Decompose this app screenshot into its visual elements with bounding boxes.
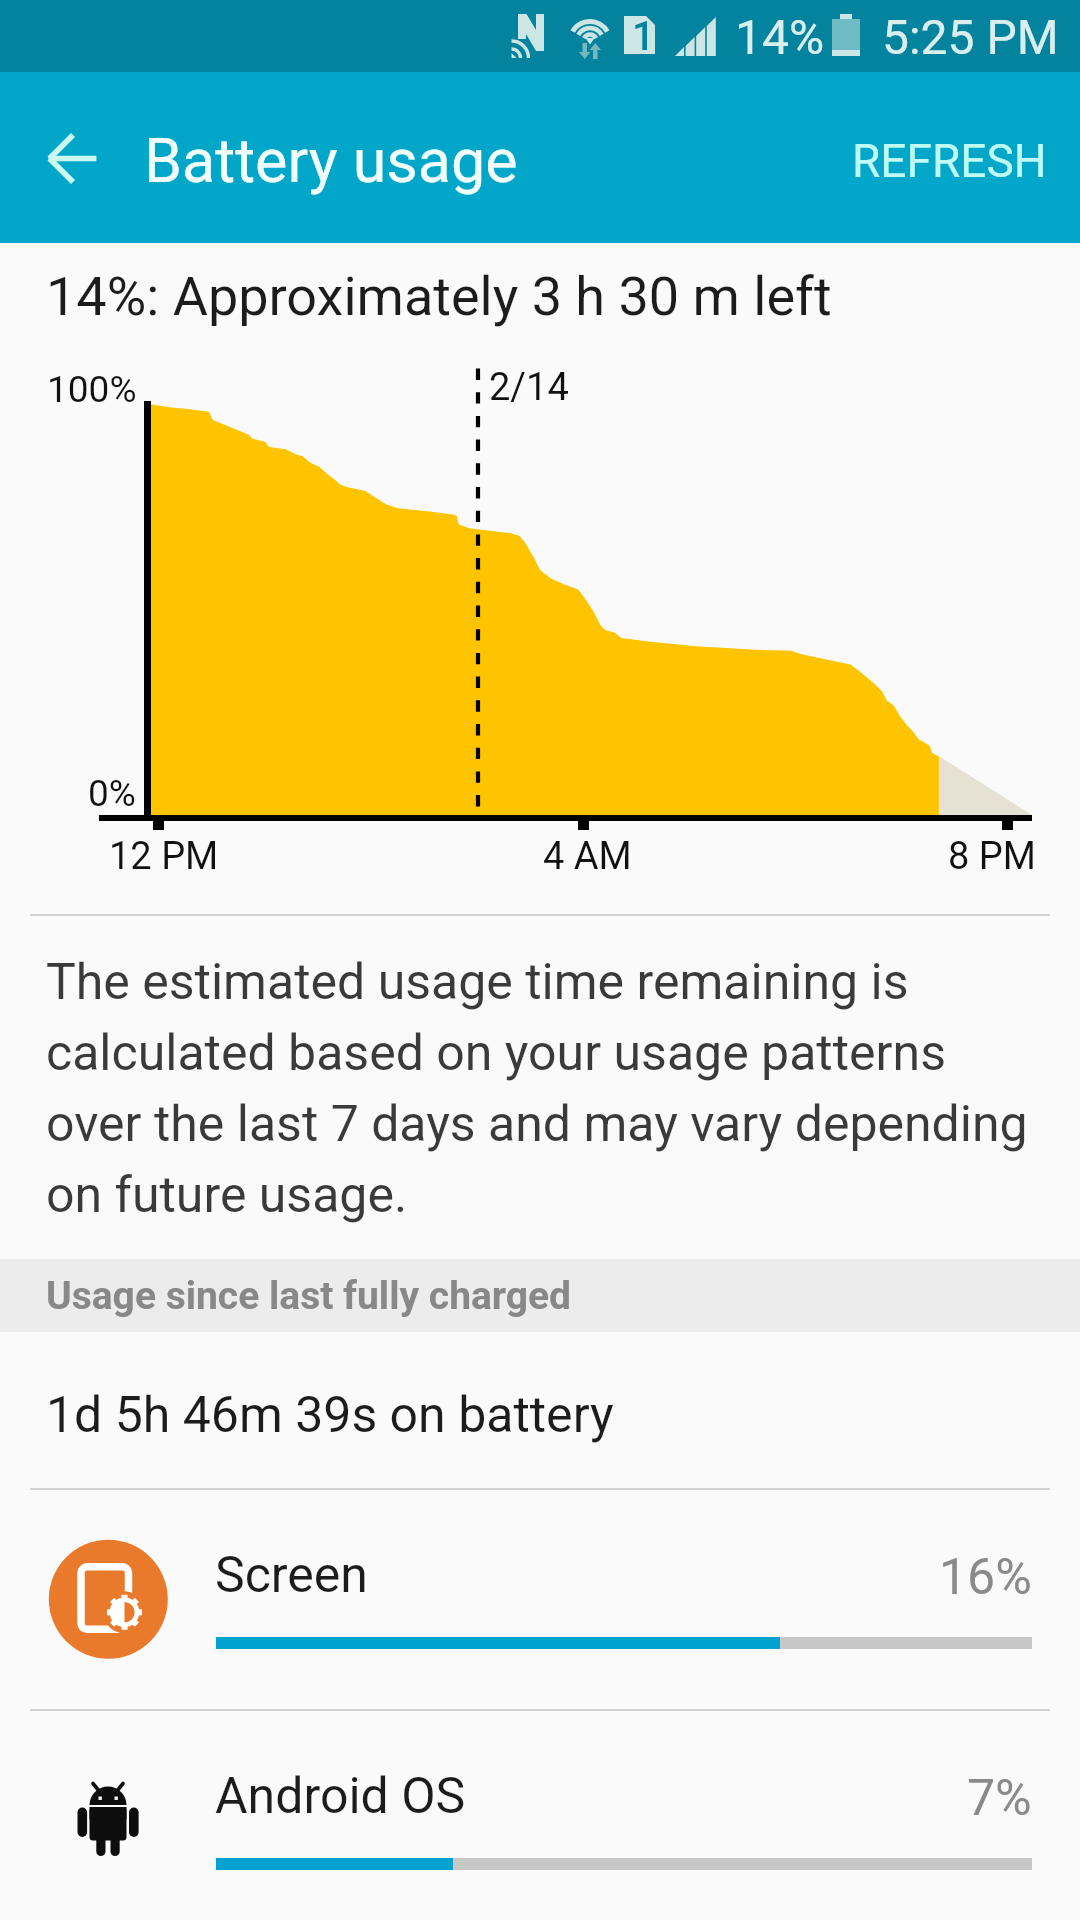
button[interactable]: Android OS [0,1711,1080,1920]
staticText: Usage since last fully charged [46,1273,572,1319]
staticText: 14% [735,9,825,65]
staticText: 1d 5h 46m 39s on battery [46,1386,614,1445]
staticText: 12 PM [109,834,219,879]
staticText: 1 [632,13,655,60]
staticText: 16% [939,1548,1032,1607]
staticText: Android OS [215,1767,466,1826]
staticText: 8 PM [948,834,1036,879]
staticText: Screen [215,1546,368,1605]
staticText: The estimated usage time remaining is ca… [46,953,1041,1224]
staticText: 5:25 PM [882,9,1059,65]
staticText: 14%: Approximately 3 h 30 m left [46,265,832,328]
button[interactable]: Back [12,87,132,207]
staticText: REFRESH [852,134,1047,188]
staticText: 4 AM [543,834,632,879]
staticText: 2/14 [489,365,569,410]
staticText: Battery usage [144,125,518,196]
staticText: 0% [88,772,136,815]
staticText: 100% [47,368,137,411]
button[interactable]: REFRESH [813,97,1080,219]
staticText: 7% [967,1769,1032,1828]
button[interactable]: Screen [0,1490,1080,1709]
